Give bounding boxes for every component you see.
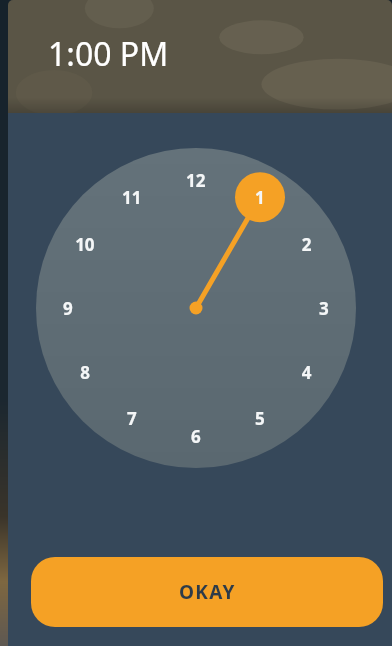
button[interactable]: 1:00 PM: [8, 0, 392, 113]
staticText: OKAY: [179, 579, 236, 605]
button[interactable]: [8, 113, 392, 528]
button[interactable]: OKAY: [31, 557, 383, 627]
staticText: 1:00 PM: [48, 32, 169, 76]
